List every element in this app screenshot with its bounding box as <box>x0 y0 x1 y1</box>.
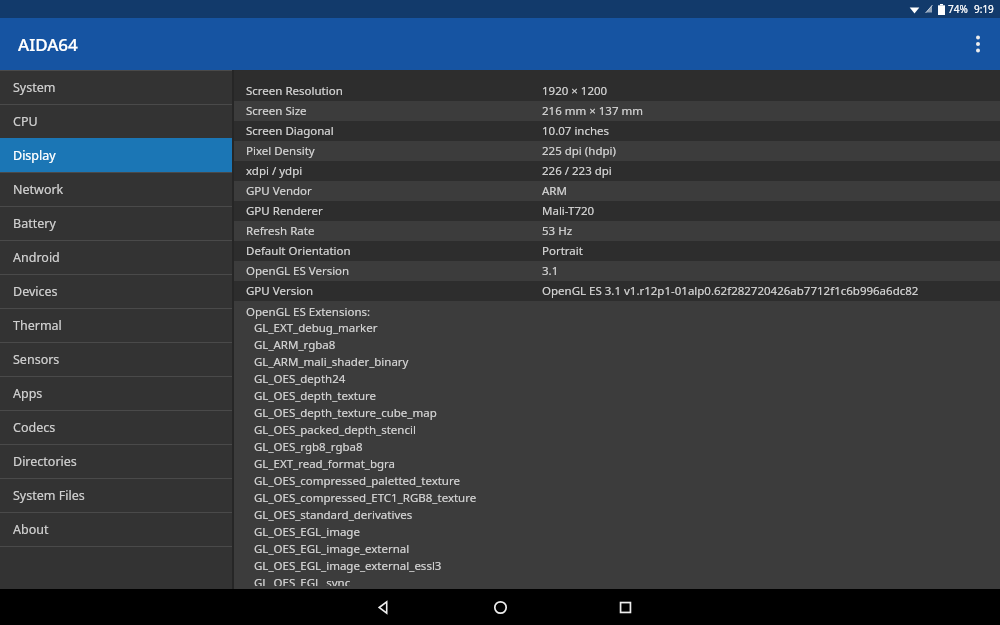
staticText: 3.1 <box>542 263 559 279</box>
staticText: 226 / 223 dpi <box>542 163 612 179</box>
button[interactable]: Sensors <box>0 342 232 376</box>
staticText: Display <box>13 147 56 164</box>
button[interactable]: Refresh Rate <box>234 221 1000 241</box>
button[interactable]: GPU Vendor <box>234 181 1000 201</box>
staticText: GL_OES_EGL_image_external_essl3 <box>254 558 442 574</box>
staticText: Devices <box>13 283 58 300</box>
staticText: 216 mm × 137 mm <box>542 103 644 119</box>
staticText: GL_OES_EGL_image_external <box>254 541 410 557</box>
staticText: System Files <box>13 487 85 504</box>
staticText: 9:19 <box>974 2 994 16</box>
staticText: Portrait <box>542 243 583 259</box>
button[interactable]: Codecs <box>0 410 232 444</box>
staticText: Screen Size <box>246 103 307 119</box>
button[interactable]: Network <box>0 172 232 206</box>
button[interactable]: Home <box>482 589 518 625</box>
button[interactable]: Android <box>0 240 232 274</box>
button[interactable]: Default Orientation <box>234 241 1000 261</box>
staticText: 74% <box>948 2 968 16</box>
button[interactable]: Screen Diagonal <box>234 121 1000 141</box>
staticText: CPU <box>13 113 38 130</box>
button[interactable]: GPU Renderer <box>234 201 1000 221</box>
staticText: GL_OES_depth_texture <box>254 388 377 404</box>
staticText: GL_ARM_mali_shader_binary <box>254 354 409 370</box>
staticText: GL_OES_standard_derivatives <box>254 507 413 523</box>
staticText: Codecs <box>13 419 56 436</box>
button[interactable]: GPU Version <box>234 281 1000 301</box>
button[interactable]: Pixel Density <box>234 141 1000 161</box>
staticText: GL_OES_EGL_sync <box>254 575 351 586</box>
staticText: 1920 × 1200 <box>542 83 608 99</box>
staticText: GL_EXT_read_format_bgra <box>254 456 396 472</box>
button[interactable]: Thermal <box>0 308 232 342</box>
staticText: 10.07 inches <box>542 123 610 139</box>
button[interactable]: Back <box>364 589 400 625</box>
staticText: Pixel Density <box>246 143 315 159</box>
staticText: Screen Resolution <box>246 83 343 99</box>
staticText: 53 Hz <box>542 223 573 239</box>
staticText: GPU Renderer <box>246 203 323 219</box>
button[interactable]: Recent apps <box>607 589 643 625</box>
staticText: Battery <box>13 215 56 232</box>
staticText: OpenGL ES 3.1 v1.r12p1-01alp0.62f2827204… <box>542 283 919 299</box>
staticText: Sensors <box>13 351 60 368</box>
staticText: GL_EXT_debug_marker <box>254 320 378 336</box>
staticText: Android <box>13 249 60 266</box>
button[interactable]: Screen Size <box>234 101 1000 121</box>
button[interactable]: Screen Resolution <box>234 81 1000 101</box>
staticText: Refresh Rate <box>246 223 315 239</box>
button[interactable]: System Files <box>0 478 232 512</box>
staticText: GL_OES_compressed_paletted_texture <box>254 473 460 489</box>
button[interactable]: More options <box>956 18 1000 70</box>
staticText: Mali-T720 <box>542 203 595 219</box>
staticText: About <box>13 521 49 538</box>
staticText: GL_OES_compressed_ETC1_RGB8_texture <box>254 490 477 506</box>
staticText: Screen Diagonal <box>246 123 334 139</box>
staticText: OpenGL ES Version <box>246 263 350 279</box>
staticText: GL_OES_depth24 <box>254 371 346 387</box>
staticText: System <box>13 79 56 96</box>
staticText: Directories <box>13 453 77 470</box>
staticText: GPU Vendor <box>246 183 312 199</box>
staticText: Apps <box>13 385 43 402</box>
button[interactable]: xdpi / ydpi <box>234 161 1000 181</box>
staticText: Thermal <box>13 317 62 334</box>
staticText: 225 dpi (hdpi) <box>542 143 616 159</box>
staticText: AIDA64 <box>18 33 78 56</box>
staticText: GL_OES_packed_depth_stencil <box>254 422 416 438</box>
staticText: GL_OES_depth_texture_cube_map <box>254 405 437 421</box>
button[interactable]: Devices <box>0 274 232 308</box>
staticText: OpenGL ES Extensions: <box>246 304 371 320</box>
staticText: Default Orientation <box>246 243 351 259</box>
staticText: GL_ARM_rgba8 <box>254 337 336 353</box>
staticText: ARM <box>542 183 567 199</box>
button[interactable]: Battery <box>0 206 232 240</box>
staticText: GL_OES_rgb8_rgba8 <box>254 439 363 455</box>
staticText: GL_OES_EGL_image <box>254 524 360 540</box>
button[interactable]: About <box>0 512 232 546</box>
button[interactable]: OpenGL ES Version <box>234 261 1000 281</box>
button[interactable]: Directories <box>0 444 232 478</box>
staticText: xdpi / ydpi <box>246 163 303 179</box>
staticText: Network <box>13 181 64 198</box>
staticText: GPU Version <box>246 283 314 299</box>
button[interactable]: Apps <box>0 376 232 410</box>
button[interactable]: Display <box>0 138 232 172</box>
button[interactable]: System <box>0 70 232 104</box>
button[interactable]: CPU <box>0 104 232 138</box>
